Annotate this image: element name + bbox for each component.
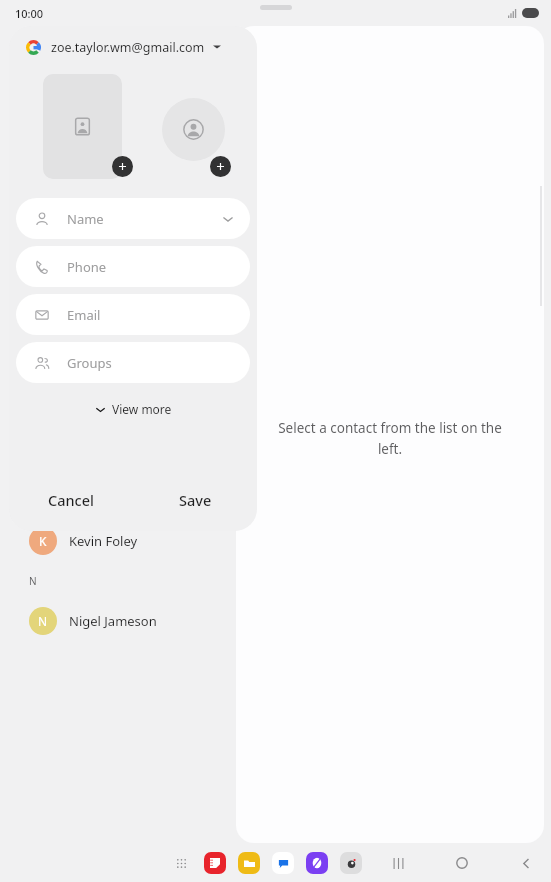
staticText: N	[29, 574, 37, 588]
button[interactable]: Email	[16, 294, 250, 335]
button[interactable]: Browser	[306, 852, 328, 874]
button[interactable]: Groups	[16, 342, 250, 383]
button[interactable]: Add photo	[112, 156, 133, 177]
staticText: Cancel	[48, 490, 94, 510]
staticText: Select a contact from the list on the le…	[236, 419, 544, 458]
staticText: Groups	[67, 354, 112, 372]
button[interactable]: All apps	[170, 852, 192, 874]
button[interactable]: Notes	[204, 852, 226, 874]
button[interactable]: Files	[238, 852, 260, 874]
staticText: Save	[179, 490, 212, 510]
button[interactable]: K	[0, 520, 228, 562]
button[interactable]: Add photo	[43, 74, 122, 179]
button[interactable]: zoe.taylor.wm@gmail.com	[9, 26, 257, 68]
staticText: K	[39, 533, 47, 549]
button[interactable]: Save	[133, 469, 257, 531]
button[interactable]: Recent apps	[385, 850, 411, 876]
button[interactable]: Camera	[340, 852, 362, 874]
staticText: Name	[67, 210, 104, 228]
button[interactable]: Name	[16, 198, 250, 239]
staticText: Kevin Foley	[69, 532, 138, 550]
button[interactable]: Messages	[272, 852, 294, 874]
staticText: Nigel Jameson	[69, 612, 157, 630]
button[interactable]: Back	[513, 850, 539, 876]
staticText: Phone	[67, 258, 107, 276]
button[interactable]: Add contact photo	[210, 156, 231, 177]
staticText: Email	[67, 306, 101, 324]
staticText: N	[38, 613, 48, 629]
button[interactable]: Phone	[16, 246, 250, 287]
staticText: 10:00	[15, 6, 44, 21]
button[interactable]: Home	[449, 850, 475, 876]
button[interactable]: Add contact photo	[162, 98, 225, 161]
button[interactable]: Cancel	[9, 469, 133, 531]
button[interactable]: View more	[85, 397, 182, 421]
button[interactable]: N	[0, 600, 228, 642]
staticText: zoe.taylor.wm@gmail.com	[51, 39, 205, 56]
staticText: View more	[112, 401, 172, 417]
